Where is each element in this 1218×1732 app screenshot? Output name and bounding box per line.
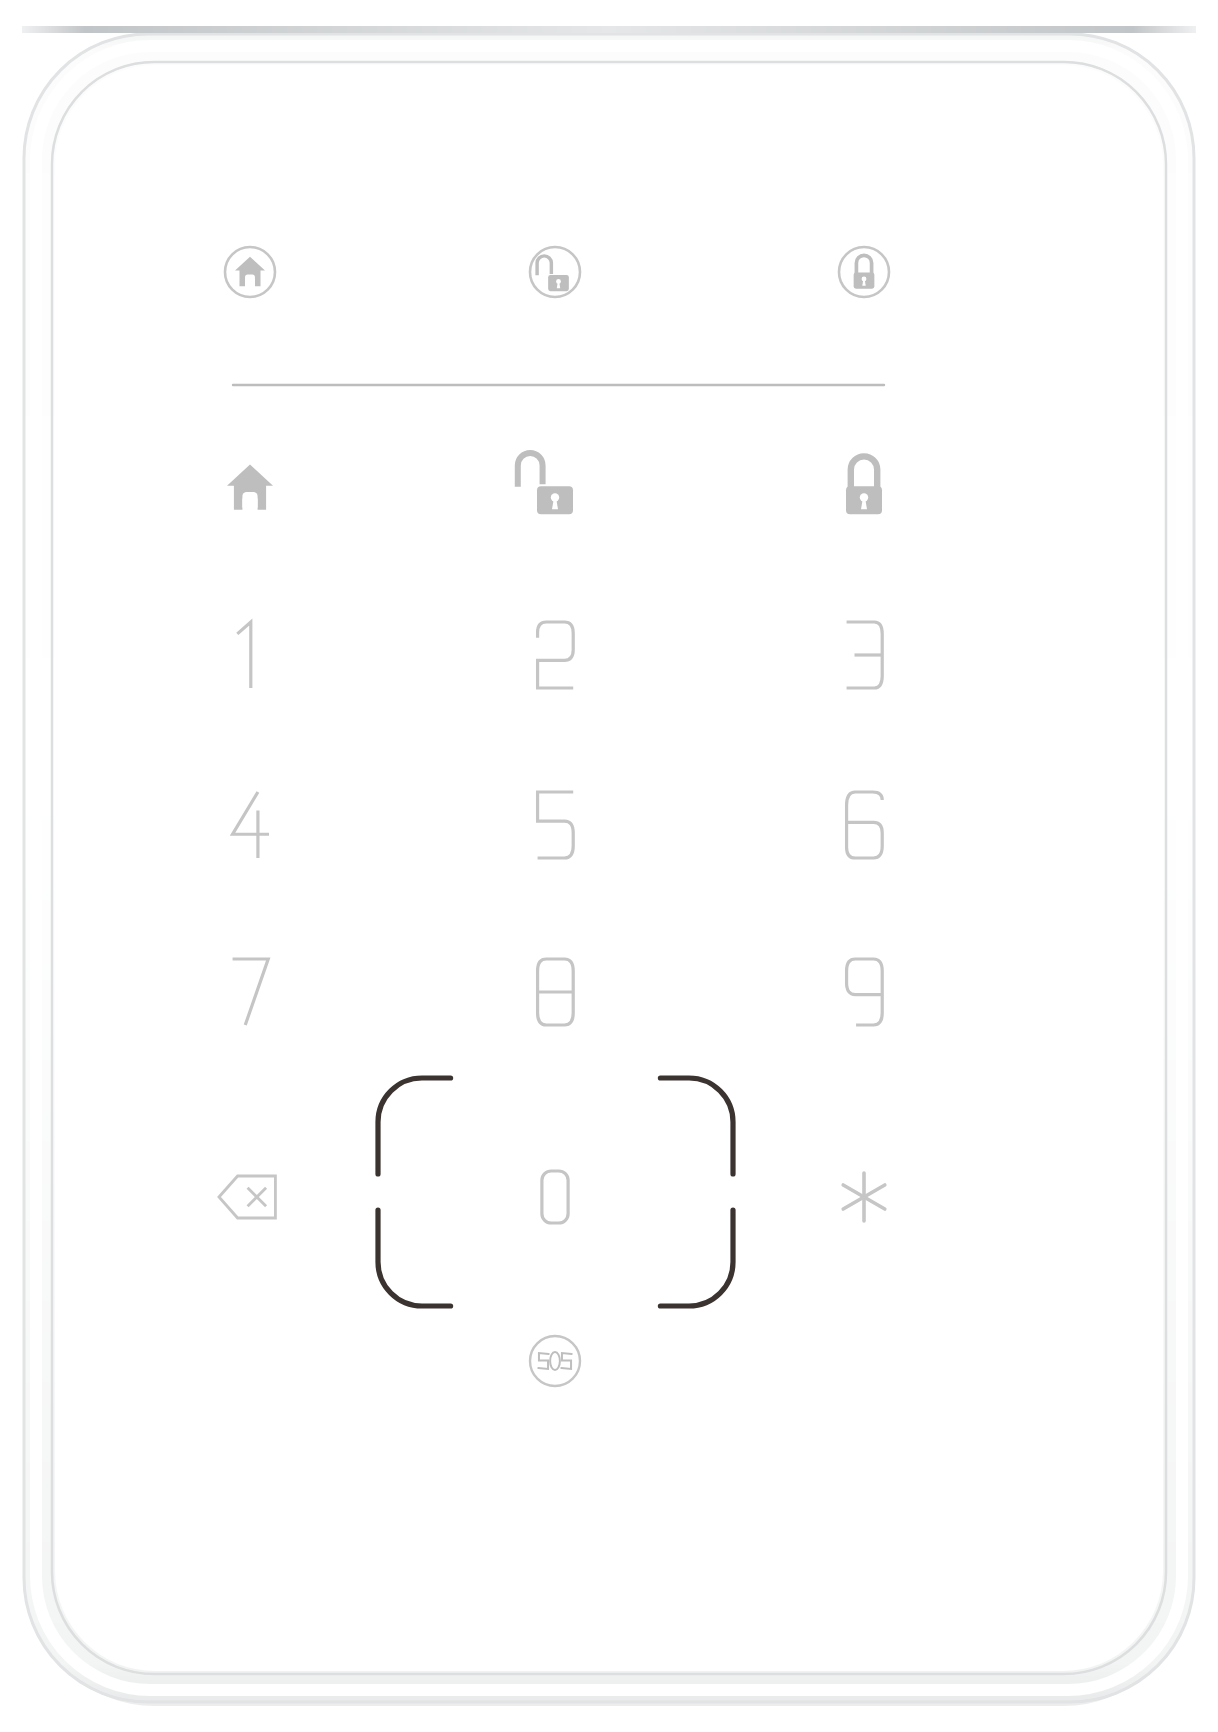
button[interactable]: 9: [794, 922, 934, 1062]
button[interactable]: 0: [485, 1127, 625, 1267]
button[interactable]: 8: [485, 922, 625, 1062]
button[interactable]: Arm away: [805, 213, 923, 331]
button[interactable]: 1: [180, 585, 320, 725]
button[interactable]: 7: [180, 922, 320, 1062]
button[interactable]: 4: [180, 755, 320, 895]
button[interactable]: Arm home: [191, 213, 309, 331]
button[interactable]: Disarm: [496, 213, 614, 331]
button[interactable]: Unlock: [496, 429, 614, 547]
button[interactable]: Home: [191, 429, 309, 547]
button[interactable]: 2: [485, 585, 625, 725]
button[interactable]: 3: [794, 585, 934, 725]
button[interactable]: 5: [485, 755, 625, 895]
button[interactable]: SOS emergency call: [500, 1306, 610, 1416]
button[interactable]: Backspace: [185, 1132, 315, 1262]
button[interactable]: Asterisk: [799, 1132, 929, 1262]
button[interactable]: Lock: [805, 429, 923, 547]
button[interactable]: 6: [794, 755, 934, 895]
